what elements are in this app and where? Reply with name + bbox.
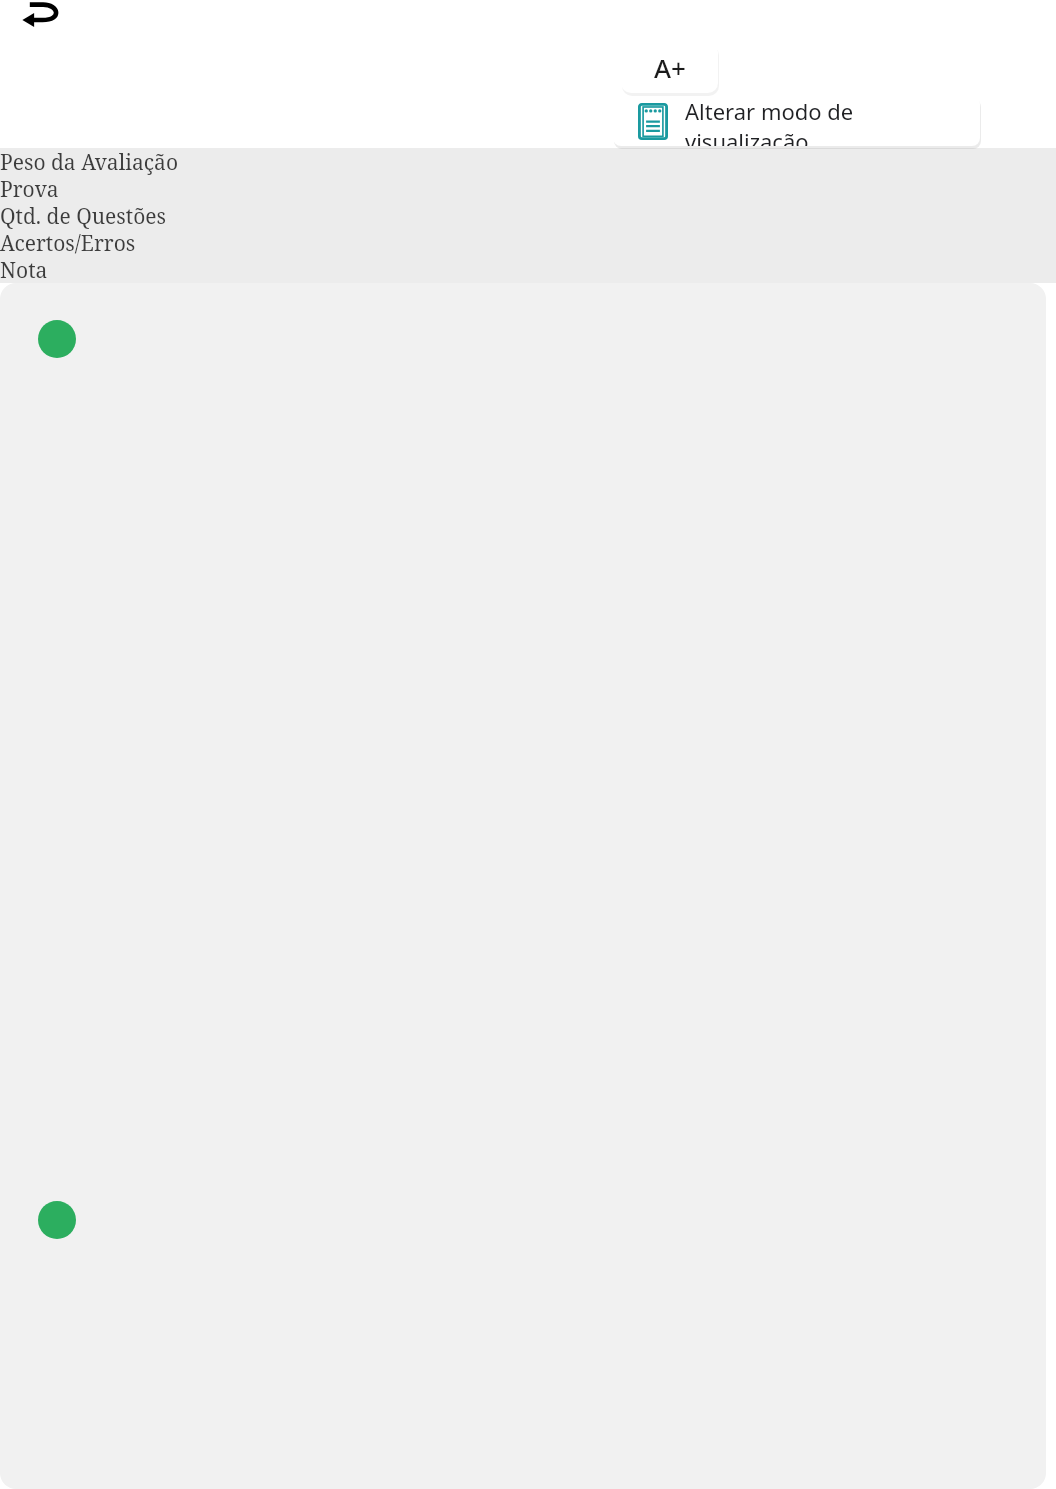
staticText: Qtd. de Questões bbox=[0, 202, 167, 229]
button[interactable]: Voltar bbox=[14, 0, 76, 40]
staticText: Peso da Avaliação bbox=[0, 148, 178, 175]
staticText: Nota bbox=[0, 256, 48, 283]
button[interactable]: Status aprovado bbox=[38, 1201, 76, 1239]
staticText: A+ bbox=[654, 50, 686, 85]
staticText: Acertos/Erros bbox=[0, 229, 136, 256]
staticText: Alterar modo de visualização bbox=[685, 96, 980, 146]
button[interactable]: Status aprovado bbox=[38, 320, 76, 358]
button[interactable]: Alterar modo de visualização bbox=[613, 96, 980, 146]
button[interactable]: A+ bbox=[621, 42, 718, 93]
staticText: Prova bbox=[0, 175, 59, 202]
